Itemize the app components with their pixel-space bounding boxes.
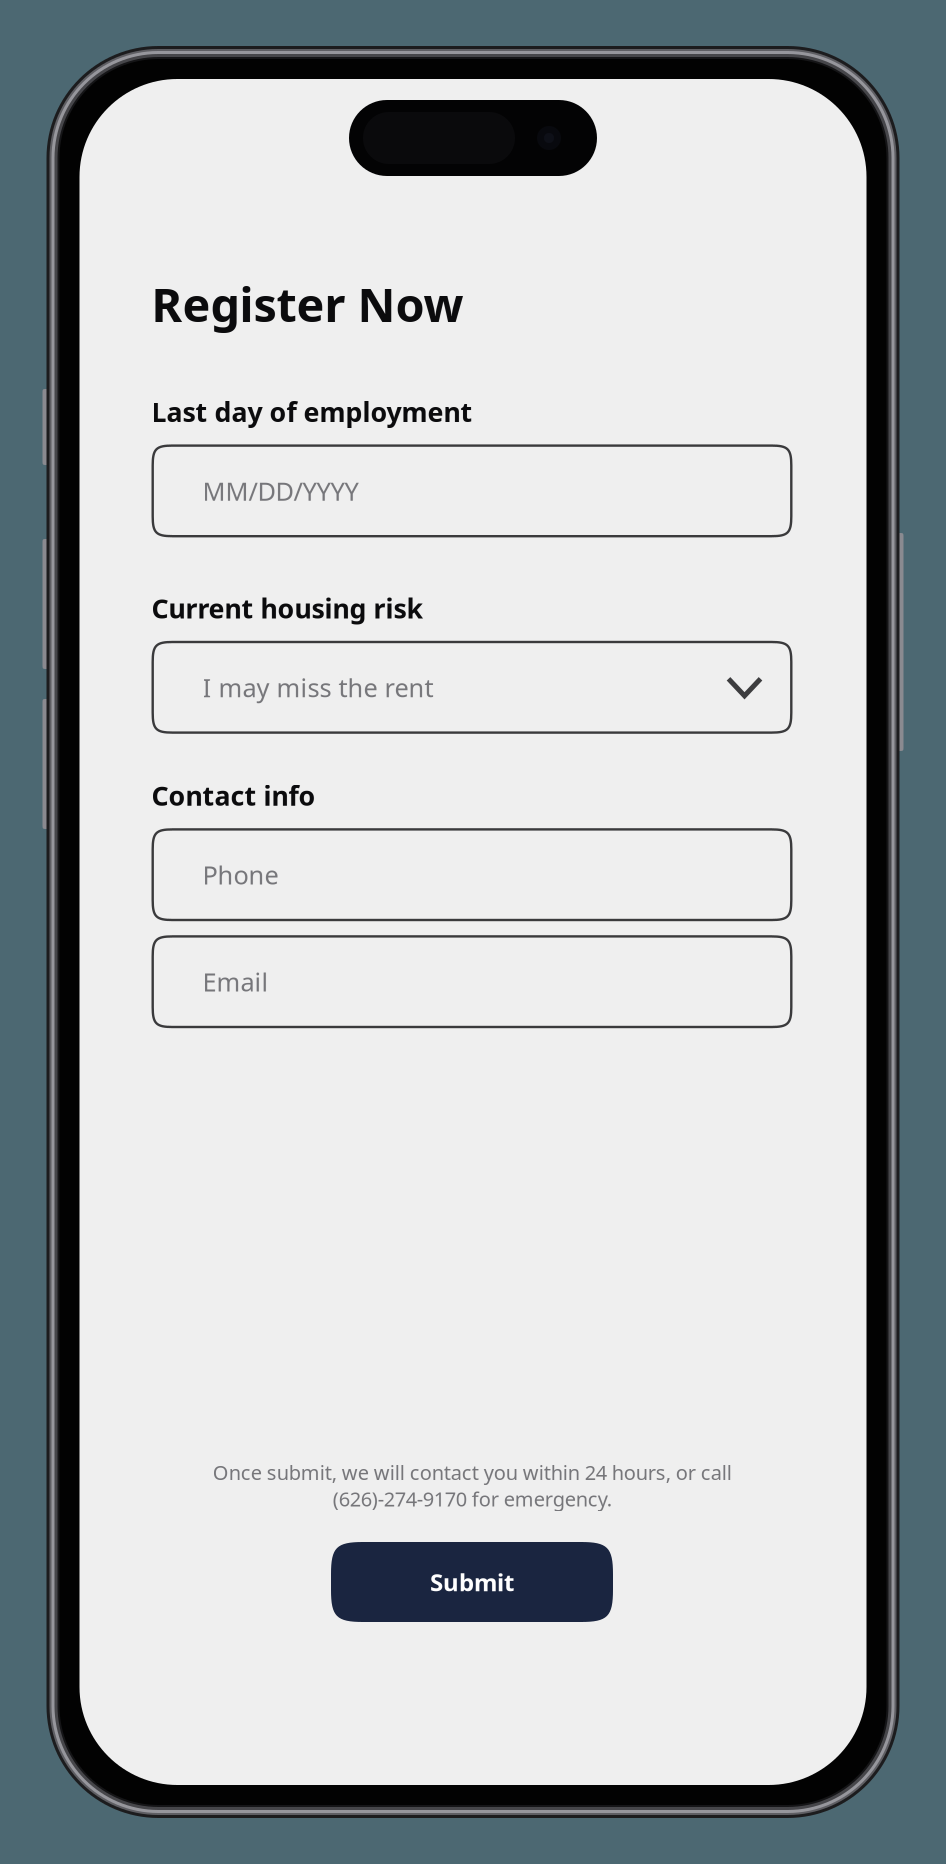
staticText: Submit [430,1566,514,1598]
staticText: Contact info [151,778,315,813]
staticText: Phone [202,858,278,891]
staticText: Email [202,965,268,998]
staticText: Register Now [151,273,463,335]
button[interactable]: Submit [331,1542,613,1622]
staticText: Once submit, we will contact you within … [212,1459,731,1512]
staticText: Last day of employment [151,394,472,429]
staticText: MM/DD/YYYY [202,474,358,508]
button[interactable]: MM/DD/YYYY [151,444,792,537]
staticText: I may miss the rent [202,670,433,704]
button[interactable]: I may miss the rent [151,641,792,734]
button[interactable]: Email [151,935,792,1028]
button[interactable]: Phone [151,828,792,921]
staticText: Current housing risk [151,590,423,626]
